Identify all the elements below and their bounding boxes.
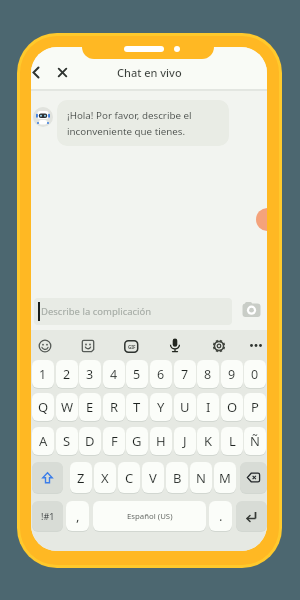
button[interactable]: A — [32, 427, 54, 455]
staticText: 4 — [110, 366, 118, 383]
button[interactable]: 2 — [56, 360, 78, 388]
button[interactable]: S — [56, 427, 78, 455]
staticText: F — [111, 432, 118, 450]
button[interactable]: Y — [150, 393, 172, 421]
button[interactable] — [236, 501, 267, 531]
button[interactable] — [212, 339, 226, 353]
button[interactable]: C — [118, 462, 140, 493]
staticText: T — [133, 398, 141, 416]
staticText: E — [86, 398, 94, 416]
button[interactable]: !#1 — [32, 501, 63, 531]
staticText: I — [206, 398, 211, 416]
button[interactable]: T — [126, 393, 148, 421]
button[interactable]: . — [209, 501, 232, 531]
button[interactable] — [32, 462, 63, 493]
staticText: Describe la complicación — [41, 305, 152, 318]
button[interactable]: GIF — [124, 340, 139, 353]
staticText: U — [180, 398, 190, 416]
button[interactable]: 9 — [221, 360, 243, 388]
staticText: 1 — [39, 366, 47, 383]
button[interactable]: I — [197, 393, 219, 421]
button[interactable]: 8 — [197, 360, 219, 388]
button[interactable]: 7 — [174, 360, 196, 388]
button[interactable]: J — [174, 427, 196, 455]
button[interactable] — [241, 299, 263, 318]
staticText: D — [85, 432, 95, 450]
button[interactable]: , — [66, 501, 89, 531]
button[interactable]: 4 — [103, 360, 125, 388]
button[interactable]: L — [221, 427, 243, 455]
staticText: Q — [38, 398, 49, 416]
staticText: 5 — [133, 366, 141, 383]
staticText: N — [196, 469, 206, 487]
staticText: J — [183, 432, 187, 450]
staticText: 3 — [86, 366, 94, 383]
staticText: ¡Hola! Por favor, describe el — [67, 109, 192, 122]
button[interactable] — [240, 462, 267, 493]
staticText: V — [149, 469, 157, 487]
button[interactable]: Ñ — [244, 427, 266, 455]
button[interactable]: D — [79, 427, 101, 455]
button[interactable]: F — [103, 427, 125, 455]
button[interactable]: W — [56, 393, 78, 421]
staticText: 8 — [204, 366, 212, 383]
staticText: Español (US) — [127, 511, 173, 522]
staticText: Z — [77, 469, 85, 487]
staticText: . — [219, 507, 223, 525]
button[interactable]: G — [126, 427, 148, 455]
button[interactable]: M — [214, 462, 236, 493]
staticText: Chat en vivo — [117, 65, 182, 80]
button[interactable]: 5 — [126, 360, 148, 388]
button[interactable]: V — [142, 462, 164, 493]
staticText: 6 — [157, 366, 165, 383]
button[interactable]: 0 — [244, 360, 266, 388]
staticText: Ñ — [250, 432, 260, 450]
staticText: 7 — [181, 366, 189, 383]
button[interactable] — [81, 339, 95, 353]
staticText: X — [101, 469, 109, 487]
button[interactable]: X — [94, 462, 116, 493]
staticText: 0 — [251, 366, 259, 383]
staticText: H — [156, 432, 166, 450]
staticText: G — [132, 432, 142, 450]
staticText: GIF — [128, 344, 136, 350]
staticText: !#1 — [41, 510, 55, 522]
button[interactable]: P — [244, 393, 266, 421]
staticText: C — [125, 469, 134, 487]
staticText: O — [227, 398, 238, 416]
button[interactable]: N — [190, 462, 212, 493]
staticText: inconveniente que tienes. — [67, 125, 186, 138]
staticText: B — [173, 469, 182, 487]
button[interactable]: 3 — [79, 360, 101, 388]
staticText: S — [63, 432, 71, 450]
staticText: K — [204, 432, 213, 450]
button[interactable]: H — [150, 427, 172, 455]
button[interactable] — [58, 68, 67, 77]
staticText: 9 — [228, 366, 236, 383]
button[interactable] — [31, 66, 43, 79]
staticText: Y — [157, 398, 165, 416]
staticText: L — [229, 432, 236, 450]
button[interactable] — [38, 339, 52, 353]
button[interactable] — [249, 342, 263, 349]
staticText: W — [61, 398, 74, 416]
button[interactable]: R — [103, 393, 125, 421]
button[interactable]: B — [166, 462, 188, 493]
button[interactable]: U — [174, 393, 196, 421]
button[interactable]: Describe la complicación — [34, 298, 232, 325]
staticText: , — [76, 507, 80, 525]
staticText: R — [110, 398, 119, 416]
button[interactable]: 6 — [150, 360, 172, 388]
button[interactable]: O — [221, 393, 243, 421]
button[interactable] — [168, 338, 182, 353]
button[interactable]: K — [197, 427, 219, 455]
button[interactable]: 1 — [32, 360, 54, 388]
button[interactable] — [256, 208, 267, 231]
button[interactable]: Español (US) — [93, 501, 206, 531]
staticText: A — [39, 432, 48, 450]
staticText: P — [251, 398, 259, 416]
button[interactable]: Q — [32, 393, 54, 421]
button[interactable]: Z — [70, 462, 92, 493]
staticText: M — [219, 469, 231, 487]
button[interactable]: E — [79, 393, 101, 421]
